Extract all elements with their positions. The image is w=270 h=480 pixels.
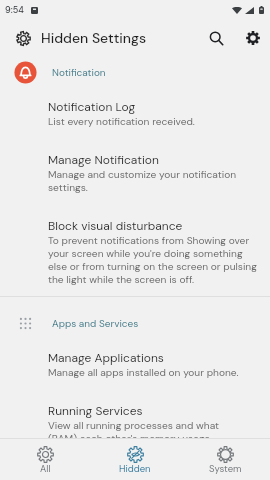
staticText: Manage Notification [48,152,159,168]
button[interactable]: Search [203,25,229,51]
button[interactable]: System [180,439,270,480]
staticText: Notification [52,66,106,79]
button[interactable]: Settings [240,25,266,51]
staticText: Manage Applications [48,350,164,366]
button[interactable]: Block visual disturbance [0,204,270,296]
staticText: Notification Log [48,99,136,115]
staticText: Running Services [48,403,143,419]
button[interactable]: Notification Log [0,85,270,138]
button[interactable]: Manage Applications [0,336,270,389]
staticText: Hidden Settings [41,29,147,47]
staticText: List every notification received. [48,115,195,128]
staticText: Apps and Services [52,317,139,330]
button[interactable]: Hidden [90,439,180,480]
staticText: 9:54 [5,4,24,16]
staticText: All [40,463,51,475]
staticText: View all running processes and what (RAM… [48,419,220,445]
staticText: System [209,463,242,475]
staticText: Block visual disturbance [48,218,183,234]
staticText: Hidden [119,463,151,475]
staticText: Manage all apps installed on your phone. [48,366,239,379]
staticText: Manage and customize your notification s… [48,168,260,194]
button[interactable]: All [0,439,90,480]
button[interactable]: Running Services [0,389,270,455]
staticText: To prevent notifications from Showing ov… [48,234,260,286]
button[interactable]: Manage Notification [0,138,270,204]
